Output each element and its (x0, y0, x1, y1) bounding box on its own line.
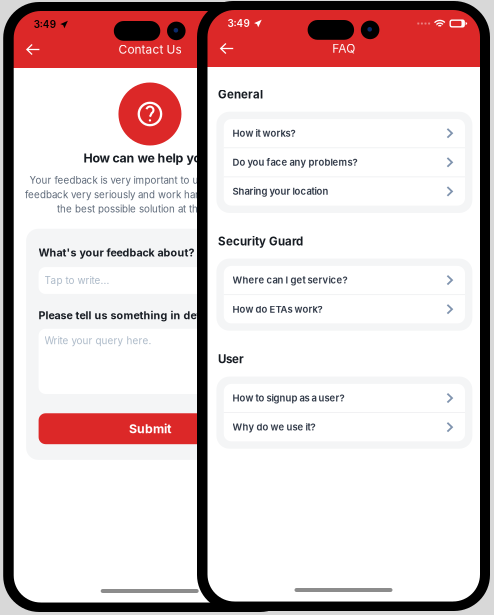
staticText: Where can I get service? (232, 274, 347, 286)
staticText: Sharing your location (232, 186, 328, 197)
button[interactable]: Write your query here. (39, 329, 261, 394)
staticText: 3:49 (227, 17, 249, 29)
button[interactable]: Back (14, 35, 54, 63)
staticText: User (218, 352, 244, 366)
button[interactable]: How do ETAs work? (224, 295, 465, 323)
staticText: What's your feedback about? (39, 246, 195, 259)
staticText: Submit (129, 421, 171, 436)
staticText: How do ETAs work? (232, 303, 322, 315)
staticText: How to signup as a user? (232, 392, 344, 404)
button[interactable]: Where can I get service? (224, 266, 465, 294)
button[interactable]: Tap to write... (39, 267, 261, 294)
button[interactable]: Submit (39, 413, 261, 444)
button[interactable]: Sharing your location (224, 177, 465, 206)
button[interactable]: How to signup as a user? (224, 384, 465, 412)
staticText: 3:49 (34, 18, 56, 30)
staticText: Security Guard (218, 234, 303, 248)
staticText: FAQ (332, 41, 355, 56)
staticText: Please tell us something in detail (39, 309, 213, 322)
staticText: How it works? (232, 127, 295, 139)
staticText: Do you face any problems? (232, 157, 357, 168)
staticText: Tap to write... (45, 274, 110, 286)
button[interactable]: Do you face any problems? (224, 148, 465, 176)
staticText: the best possible solution at the earlie… (57, 203, 243, 215)
staticText: General (218, 87, 263, 101)
button[interactable]: How it works? (224, 119, 465, 147)
staticText: Your feedback is very important to us. W… (29, 174, 270, 186)
staticText: feedback very seriously and work hard to… (25, 189, 275, 200)
staticText: How can we help you? (83, 150, 216, 165)
button[interactable]: Back (207, 34, 248, 62)
staticText: Write your query here. (45, 335, 152, 347)
button[interactable]: Why do we use it? (224, 413, 465, 441)
staticText: Why do we use it? (232, 421, 315, 433)
staticText: Contact Us (118, 42, 181, 57)
